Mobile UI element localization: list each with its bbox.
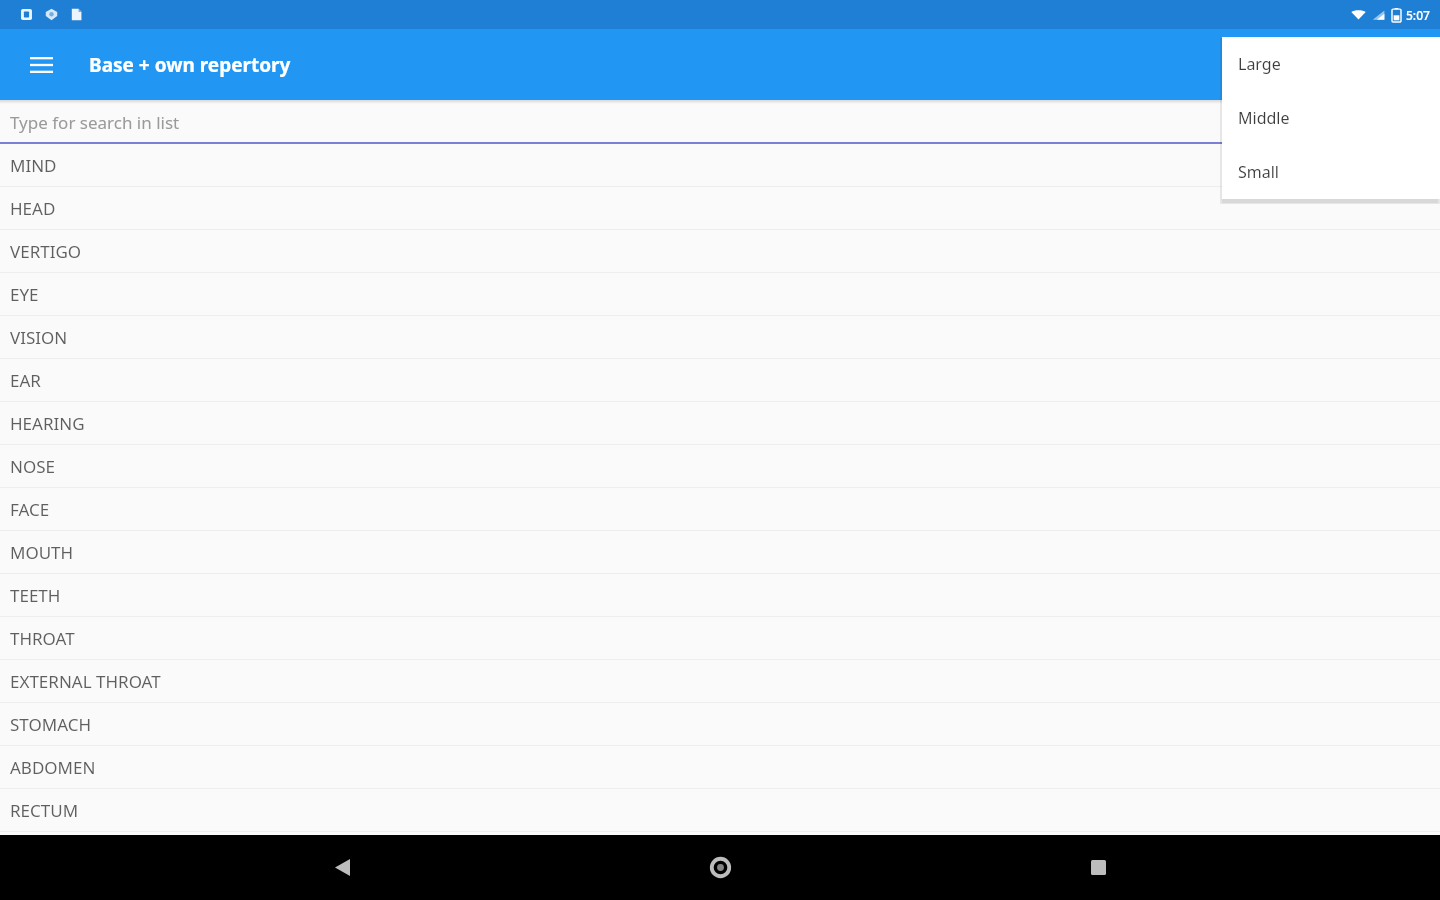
staticText: Large (1238, 53, 1281, 75)
button[interactable]: NOSE (0, 445, 1440, 488)
staticText: MOUTH (10, 541, 74, 564)
button[interactable]: EYE (0, 273, 1440, 316)
staticText: Middle (1238, 107, 1290, 129)
button[interactable]: MIND (0, 144, 1440, 187)
button[interactable]: EXTERNAL THROAT (0, 660, 1440, 703)
staticText: STOMACH (10, 713, 92, 736)
staticText: VERTIGO (10, 240, 82, 263)
staticText: EYE (10, 283, 39, 306)
staticText: ABDOMEN (10, 756, 96, 779)
button[interactable]: ABDOMEN (0, 746, 1440, 789)
staticText: 5:07 (1406, 7, 1430, 23)
staticText: EXTERNAL THROAT (10, 670, 161, 693)
staticText: Small (1238, 161, 1279, 183)
staticText: RECTUM (10, 799, 79, 822)
staticText: Type for search in list (10, 111, 180, 134)
button[interactable]: STOMACH (0, 703, 1440, 746)
staticText: HEARING (10, 412, 85, 435)
button[interactable]: MOUTH (0, 531, 1440, 574)
button[interactable]: VISION (0, 316, 1440, 359)
button[interactable]: EAR (0, 359, 1440, 402)
button[interactable]: RECTUM (0, 789, 1440, 832)
staticText: TEETH (10, 584, 61, 607)
button[interactable]: TEETH (0, 574, 1440, 617)
button[interactable]: Recent apps (1062, 835, 1134, 900)
button[interactable]: HEARING (0, 402, 1440, 445)
staticText: Base + own repertory (89, 52, 291, 78)
button[interactable]: Middle (1222, 91, 1440, 145)
staticText: EAR (10, 369, 41, 392)
button[interactable]: Small (1222, 145, 1440, 199)
button[interactable]: Open navigation drawer (17, 41, 65, 89)
staticText: VISION (10, 326, 68, 349)
button[interactable]: FACE (0, 488, 1440, 531)
staticText: HEAD (10, 197, 56, 220)
staticText: FACE (10, 498, 50, 521)
button[interactable]: Large (1222, 37, 1440, 91)
button[interactable]: VERTIGO (0, 230, 1440, 273)
staticText: NOSE (10, 455, 55, 478)
staticText: THROAT (10, 627, 75, 650)
staticText: MIND (10, 154, 57, 177)
button[interactable]: Type for search in list (0, 104, 1440, 144)
button[interactable]: Home (684, 835, 756, 900)
button[interactable]: HEAD (0, 187, 1440, 230)
button[interactable]: Back (306, 835, 378, 900)
button[interactable]: THROAT (0, 617, 1440, 660)
